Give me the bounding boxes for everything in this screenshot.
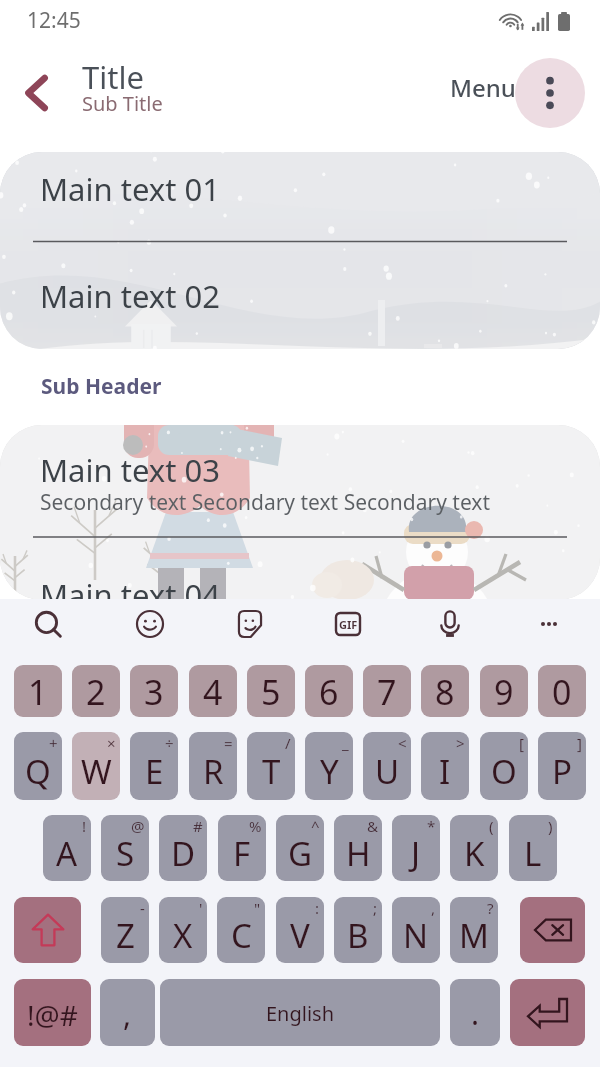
- button[interactable]: Main text 01: [0, 152, 600, 242]
- staticText: .: [471, 993, 480, 1034]
- button[interactable]: 1: [14, 665, 62, 717]
- button[interactable]: 8: [421, 665, 469, 717]
- staticText: @: [131, 816, 145, 836]
- button[interactable]: 2: [72, 665, 120, 717]
- button[interactable]: V: [276, 897, 324, 963]
- button[interactable]: O: [480, 732, 528, 800]
- button[interactable]: W: [72, 732, 120, 800]
- button[interactable]: J: [392, 815, 440, 881]
- button[interactable]: S: [101, 815, 149, 881]
- staticText: Main text 03: [40, 449, 220, 491]
- button[interactable]: 0: [538, 665, 586, 717]
- button[interactable]: H: [334, 815, 382, 881]
- staticText: P: [552, 749, 572, 794]
- button[interactable]: shift: [14, 897, 81, 963]
- button[interactable]: U: [363, 732, 411, 800]
- button[interactable]: Main text 02: [0, 243, 600, 349]
- button[interactable]: Menu: [450, 71, 516, 104]
- button[interactable]: F: [218, 815, 266, 881]
- button[interactable]: D: [159, 815, 207, 881]
- button[interactable]: English: [160, 979, 440, 1046]
- staticText: S: [116, 831, 135, 876]
- button[interactable]: GIF: [325, 602, 371, 648]
- staticText: GIF: [339, 617, 358, 632]
- staticText: 8: [435, 669, 455, 715]
- staticText: Main text 01: [40, 168, 220, 210]
- staticText: G: [288, 831, 313, 876]
- button[interactable]: Z: [101, 897, 149, 963]
- button[interactable]: T: [247, 732, 295, 800]
- button[interactable]: 6: [305, 665, 353, 717]
- staticText: =: [224, 733, 233, 753]
- button[interactable]: ,: [100, 979, 155, 1046]
- button[interactable]: .: [450, 979, 500, 1046]
- button[interactable]: 3: [130, 665, 178, 717]
- button[interactable]: More: [525, 602, 571, 648]
- button[interactable]: Y: [305, 732, 353, 800]
- staticText: B: [347, 913, 369, 958]
- staticText: Sub Title: [82, 90, 163, 117]
- staticText: 3: [144, 669, 164, 715]
- staticText: Y: [320, 749, 339, 794]
- button[interactable]: E: [130, 732, 178, 800]
- button[interactable]: Search: [25, 602, 71, 648]
- button[interactable]: 4: [189, 665, 237, 717]
- staticText: [: [519, 733, 524, 753]
- button[interactable]: Voice input: [425, 602, 471, 648]
- button[interactable]: C: [217, 897, 265, 963]
- button[interactable]: I: [421, 732, 469, 800]
- button[interactable]: 9: [480, 665, 528, 717]
- staticText: Title: [82, 56, 144, 98]
- staticText: A: [56, 831, 78, 876]
- button[interactable]: M: [450, 897, 498, 963]
- button[interactable]: L: [509, 815, 557, 881]
- button[interactable]: 7: [363, 665, 411, 717]
- staticText: O: [491, 749, 517, 794]
- staticText: +: [49, 733, 58, 753]
- staticText: 1: [28, 669, 48, 715]
- staticText: ): [548, 816, 553, 836]
- staticText: U: [375, 749, 400, 794]
- button[interactable]: Emoji: [125, 602, 171, 648]
- staticText: 6: [319, 669, 339, 715]
- staticText: _: [342, 733, 349, 753]
- button[interactable]: R: [189, 732, 237, 800]
- button[interactable]: More options: [515, 58, 585, 128]
- button[interactable]: X: [159, 897, 207, 963]
- staticText: ?: [487, 898, 494, 918]
- staticText: C: [231, 913, 252, 958]
- button[interactable]: 5: [247, 665, 295, 717]
- button[interactable]: Main text 04: [0, 538, 600, 600]
- button[interactable]: Q: [14, 732, 62, 800]
- staticText: :: [315, 898, 320, 918]
- button[interactable]: backspace: [520, 897, 585, 963]
- button[interactable]: Main text 03: [0, 425, 600, 537]
- staticText: English: [266, 1000, 335, 1027]
- staticText: >: [456, 733, 465, 753]
- button[interactable]: Back: [14, 69, 62, 117]
- button[interactable]: N: [392, 897, 440, 963]
- button[interactable]: A: [43, 815, 91, 881]
- button[interactable]: K: [450, 815, 498, 881]
- button[interactable]: B: [334, 897, 382, 963]
- button[interactable]: enter: [510, 979, 585, 1046]
- staticText: J: [411, 831, 421, 876]
- button[interactable]: !@#: [14, 979, 91, 1046]
- staticText: 0: [552, 669, 572, 715]
- staticText: 2: [86, 669, 106, 715]
- staticText: 7: [377, 669, 397, 715]
- staticText: D: [171, 831, 196, 876]
- staticText: <: [398, 733, 407, 753]
- staticText: &: [367, 816, 378, 836]
- staticText: T: [262, 749, 281, 794]
- staticText: M: [459, 913, 489, 958]
- staticText: Menu: [450, 71, 516, 104]
- button[interactable]: P: [538, 732, 586, 800]
- staticText: 12:45: [27, 6, 81, 35]
- button[interactable]: Stickers: [225, 602, 271, 648]
- staticText: L: [524, 831, 542, 876]
- staticText: ^: [311, 816, 320, 836]
- staticText: ]: [577, 733, 582, 753]
- staticText: #: [193, 816, 203, 836]
- button[interactable]: G: [276, 815, 324, 881]
